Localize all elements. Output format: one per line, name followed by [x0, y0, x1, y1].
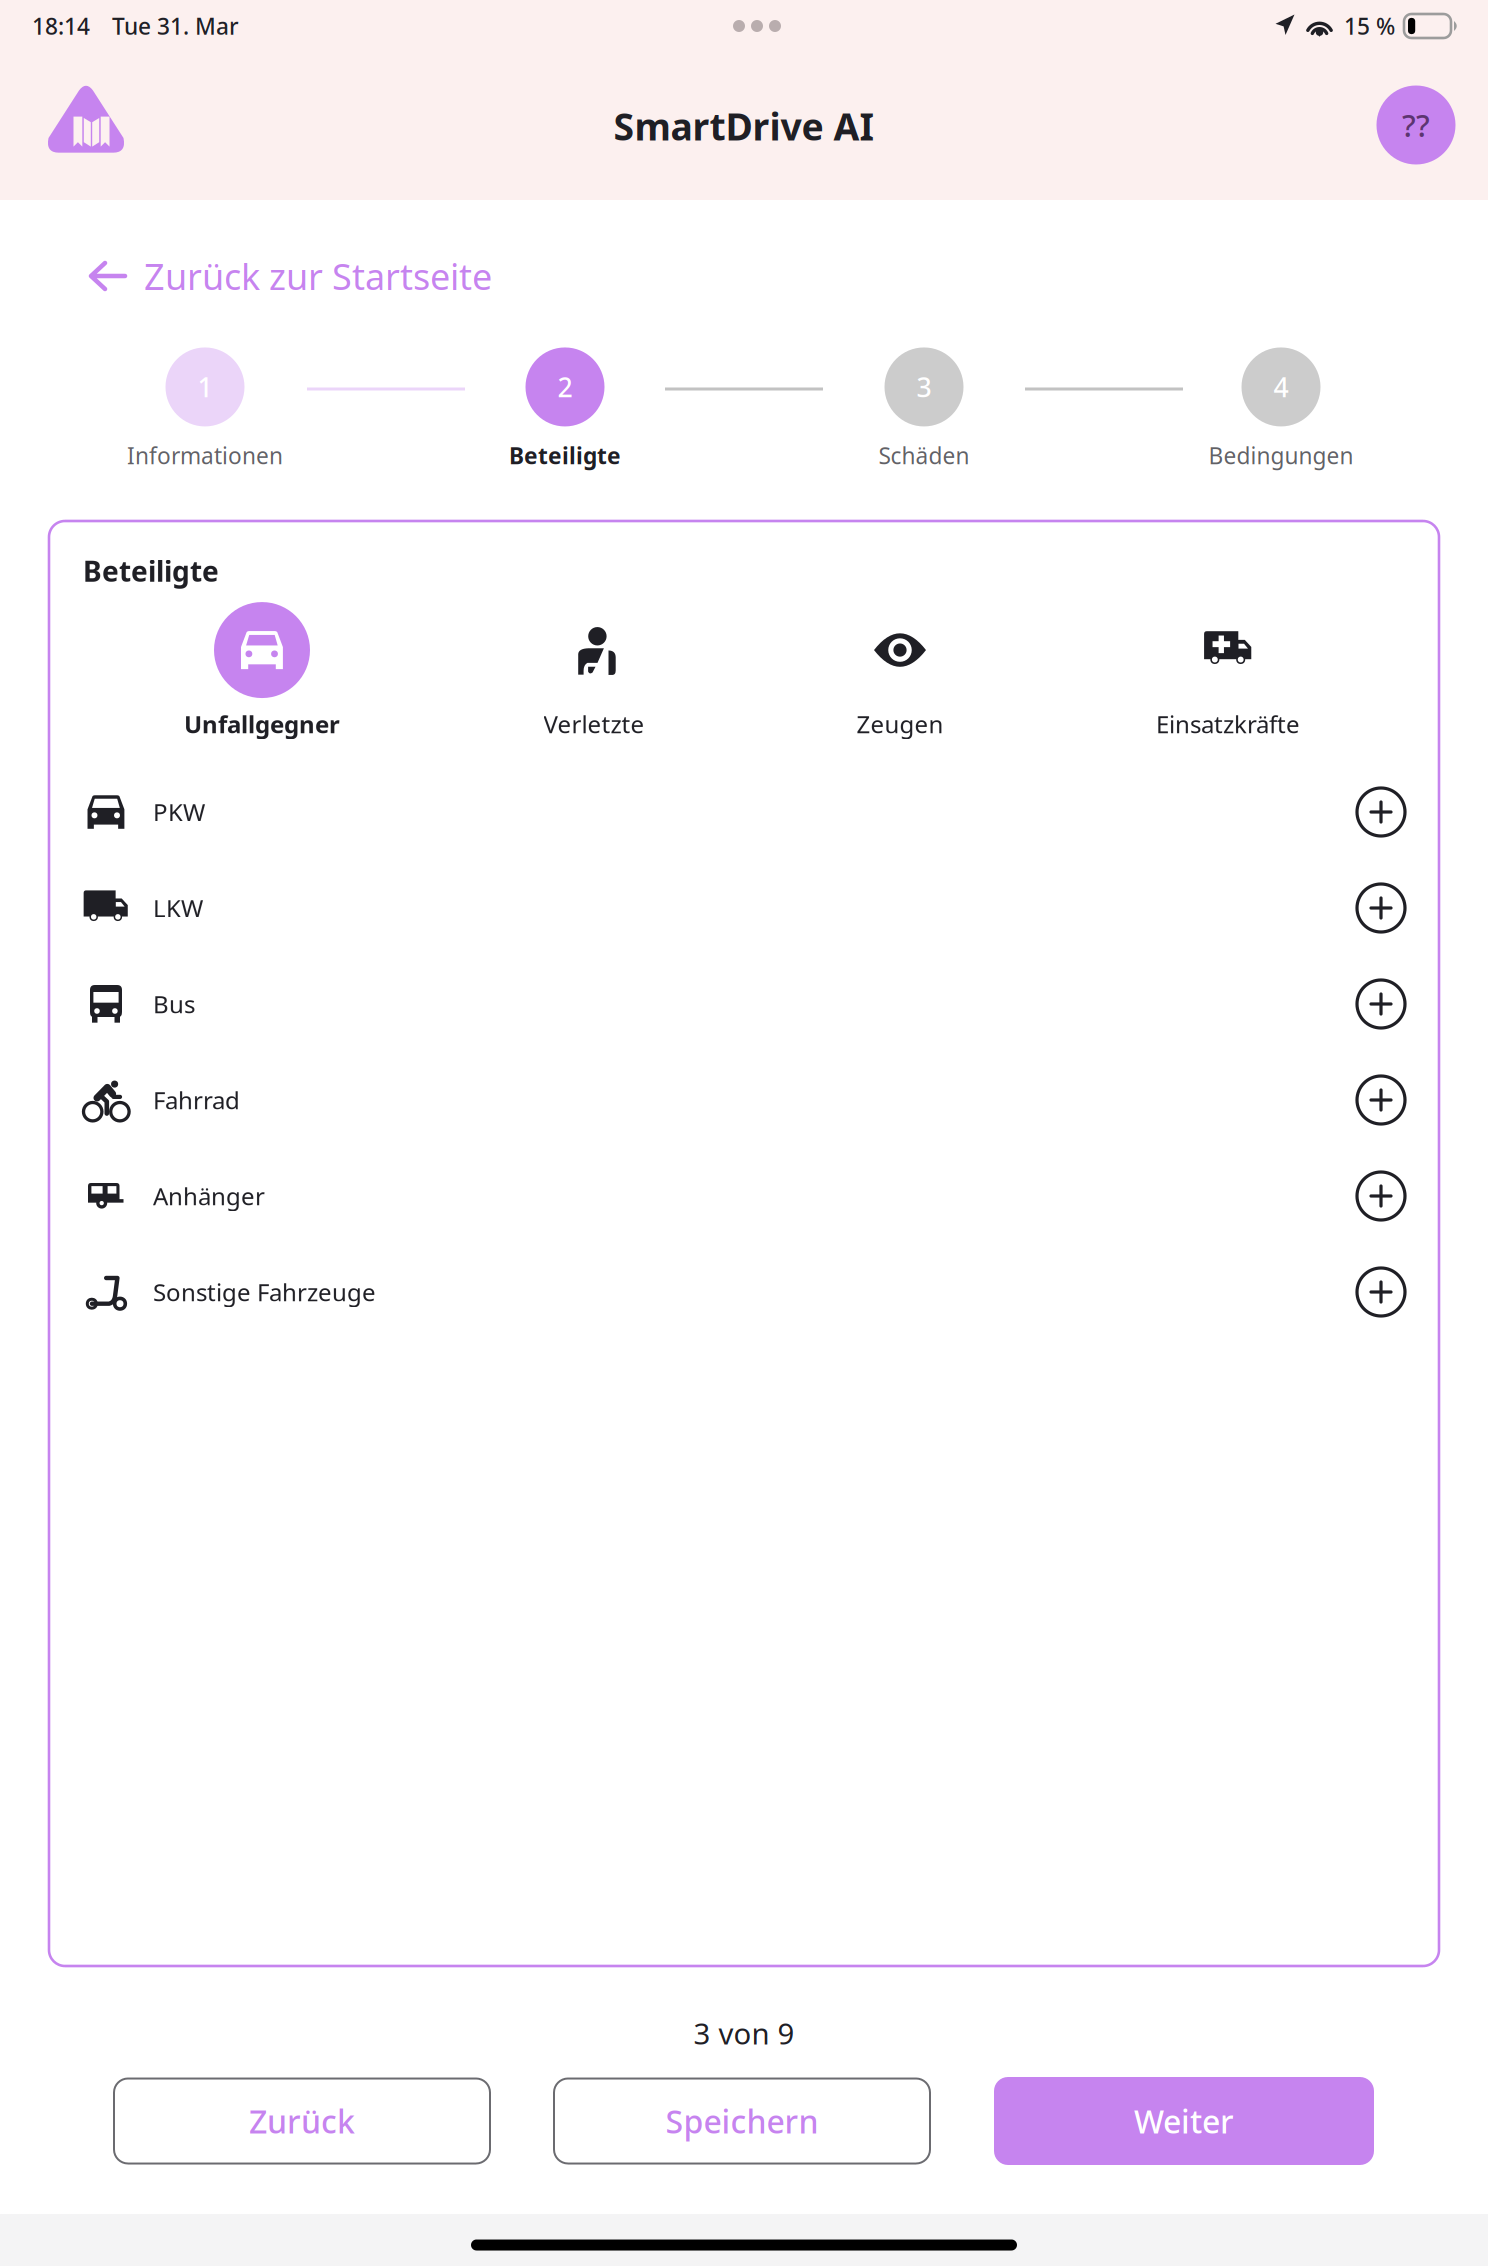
- button[interactable]: Bus: [49, 956, 1439, 1052]
- button[interactable]: Zurück zur Startseite: [88, 252, 492, 300]
- staticText: Fahrrad: [153, 1084, 240, 1116]
- staticText: Speichern: [665, 2100, 818, 2142]
- staticText: Informationen: [127, 440, 283, 470]
- staticText: 18:14: [32, 11, 90, 41]
- button[interactable]: Speichern: [554, 2078, 930, 2163]
- staticText: Anhänger: [153, 1180, 265, 1212]
- staticText: SmartDrive AI: [613, 101, 874, 151]
- button[interactable]: Anhänger: [49, 1148, 1439, 1244]
- staticText: Zeugen: [856, 708, 943, 740]
- button[interactable]: SmartDrive AI home: [45, 81, 126, 153]
- button[interactable]: PKW: [49, 764, 1439, 860]
- staticText: Bus: [153, 988, 195, 1020]
- staticText: Zurück zur Startseite: [144, 252, 492, 300]
- button[interactable]: Sonstige Fahrzeuge: [49, 1244, 1439, 1340]
- staticText: Einsatzkräfte: [1156, 708, 1300, 740]
- staticText: 15 %: [1344, 11, 1395, 41]
- staticText: Verletzte: [543, 708, 644, 740]
- staticText: Tue 31. Mar: [112, 11, 239, 41]
- button[interactable]: Weiter: [994, 2077, 1374, 2165]
- staticText: Zurück: [249, 2100, 355, 2142]
- staticText: 3: [916, 369, 931, 405]
- staticText: Weiter: [1134, 2100, 1234, 2142]
- button[interactable]: Unfallgegner: [184, 602, 340, 740]
- staticText: Sonstige Fahrzeuge: [153, 1276, 376, 1308]
- staticText: Unfallgegner: [184, 708, 340, 740]
- staticText: ??: [1402, 105, 1430, 145]
- staticText: Schäden: [878, 440, 969, 470]
- staticText: Beteiligte: [509, 440, 621, 470]
- button[interactable]: Verletzte: [543, 602, 644, 740]
- staticText: 2: [557, 369, 572, 405]
- staticText: 3 von 9: [693, 2013, 794, 2052]
- staticText: 1: [197, 369, 212, 405]
- staticText: 4: [1273, 369, 1288, 405]
- staticText: Beteiligte: [83, 552, 219, 590]
- button[interactable]: Zurück: [114, 2078, 490, 2163]
- button[interactable]: Fahrrad: [49, 1052, 1439, 1148]
- staticText: Bedingungen: [1208, 440, 1353, 470]
- staticText: PKW: [153, 796, 205, 828]
- button[interactable]: Zeugen: [852, 602, 948, 740]
- button[interactable]: Account: [1376, 85, 1455, 164]
- staticText: LKW: [153, 892, 203, 924]
- button[interactable]: LKW: [49, 860, 1439, 956]
- button[interactable]: Einsatzkräfte: [1156, 602, 1300, 740]
